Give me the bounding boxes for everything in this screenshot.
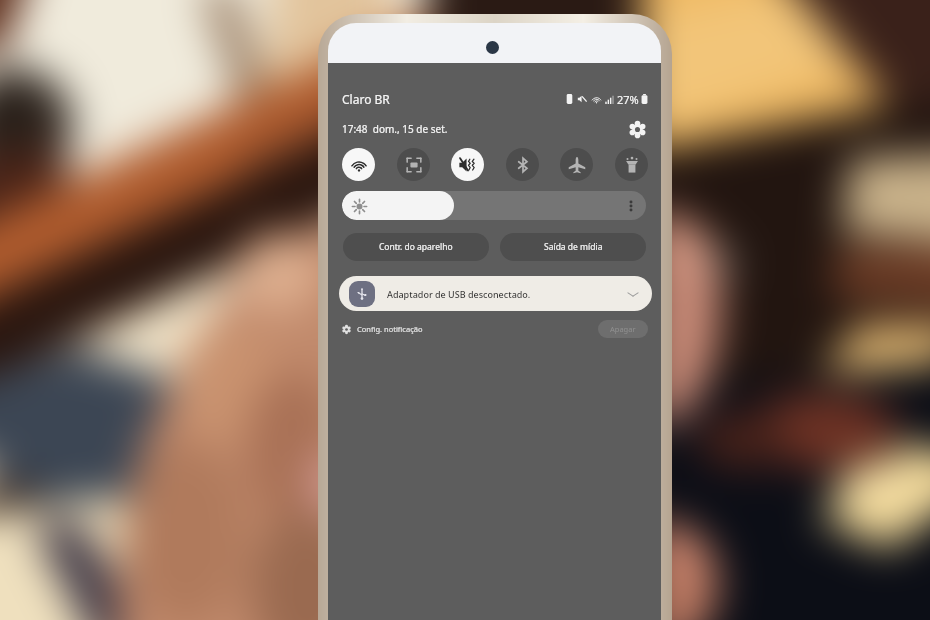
button[interactable]: Sound off xyxy=(451,148,484,181)
button[interactable]: Wi-Fi xyxy=(342,148,375,181)
staticText: Apagar xyxy=(610,324,636,334)
button[interactable]: Settings xyxy=(625,117,649,141)
button[interactable]: Contr. do aparelho xyxy=(343,233,489,261)
button[interactable]: Airplane mode xyxy=(560,148,593,181)
button[interactable]: Saída de mídia xyxy=(500,233,646,261)
button[interactable]: Flashlight xyxy=(615,148,648,181)
button[interactable]: Scan QR xyxy=(397,148,430,181)
button[interactable]: Bluetooth xyxy=(506,148,539,181)
staticText: 27% xyxy=(617,92,639,107)
button[interactable]: Brightness xyxy=(342,191,646,220)
staticText: Adaptador de USB desconectado. xyxy=(387,288,531,300)
button[interactable]: Apagar xyxy=(598,320,648,338)
button[interactable]: Adaptador de USB desconectado. xyxy=(339,276,652,311)
staticText: Saída de mídia xyxy=(544,241,603,253)
staticText: 17:48 dom., 15 de set. xyxy=(342,122,448,136)
staticText: Claro BR xyxy=(342,91,390,107)
staticText: Config. notificação xyxy=(357,324,423,334)
staticText: Contr. do aparelho xyxy=(379,241,453,253)
